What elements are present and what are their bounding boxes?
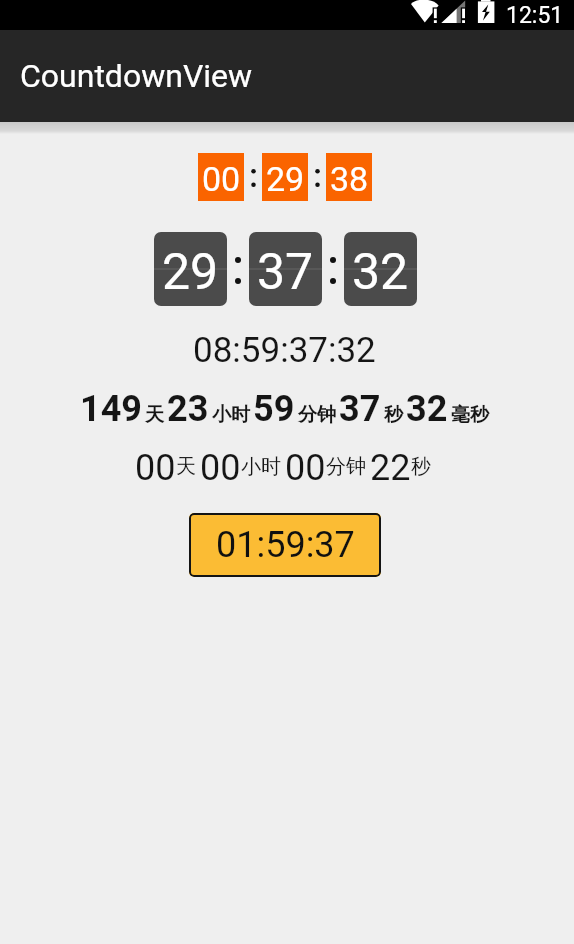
- staticText: 32: [352, 243, 409, 302]
- button[interactable]: Countdown timer: [189, 513, 381, 577]
- staticText: 秒: [411, 454, 431, 479]
- staticText: 29: [266, 159, 305, 199]
- staticText: 小时: [241, 454, 281, 479]
- staticText: 天: [145, 403, 164, 427]
- staticText: 天: [176, 454, 196, 479]
- staticText: 22: [370, 447, 411, 489]
- staticText: 23: [167, 388, 209, 430]
- staticText: CountdownView: [20, 57, 253, 95]
- staticText: 分钟: [326, 454, 366, 479]
- staticText: 37: [257, 243, 314, 302]
- staticText: 00: [202, 159, 241, 199]
- staticText: 149: [80, 388, 142, 430]
- staticText: 37: [339, 388, 381, 430]
- staticText: 59: [253, 388, 295, 430]
- staticText: 00: [200, 447, 241, 489]
- staticText: 秒: [384, 403, 403, 427]
- staticText: 小时: [212, 403, 250, 427]
- staticText: 01:59:37: [216, 524, 355, 566]
- staticText: 29: [162, 243, 219, 302]
- staticText: 32: [406, 388, 448, 430]
- staticText: 38: [330, 159, 369, 199]
- staticText: 00: [285, 447, 326, 489]
- staticText: 12:51: [506, 2, 564, 29]
- staticText: 00: [135, 447, 176, 489]
- staticText: 分钟: [298, 403, 336, 427]
- staticText: 毫秒: [451, 403, 489, 427]
- staticText: 08:59:37:32: [193, 330, 376, 371]
